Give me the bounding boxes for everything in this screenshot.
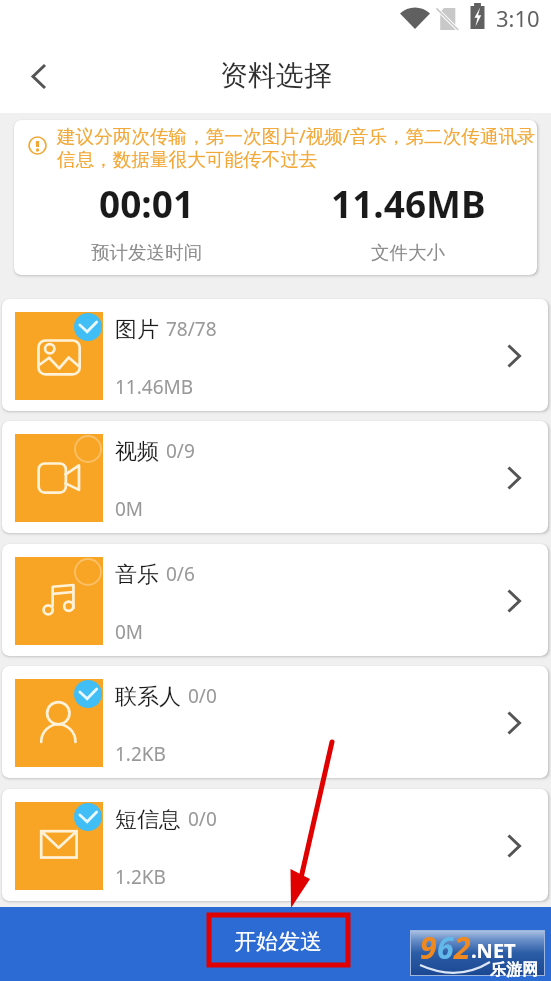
button[interactable]: Back: [18, 55, 60, 97]
staticText: 0/9: [166, 438, 195, 464]
button[interactable]: 音乐: [2, 544, 548, 656]
button[interactable]: 图片: [2, 299, 548, 411]
staticText: 6: [437, 927, 454, 968]
staticText: 短信息: [115, 806, 181, 834]
button[interactable]: 开始发送: [208, 914, 348, 965]
staticText: 联系人: [115, 683, 181, 711]
staticText: 3:10: [496, 3, 540, 33]
button[interactable]: 视频: [2, 421, 548, 533]
staticText: 2: [454, 927, 471, 968]
staticText: 78/78: [166, 316, 217, 342]
staticText: 乐游网: [490, 960, 538, 980]
staticText: 0M: [115, 496, 144, 522]
staticText: 11.46MB: [115, 374, 194, 400]
button[interactable]: 联系人: [2, 666, 548, 778]
staticText: 1.2KB: [115, 741, 166, 767]
staticText: 0M: [115, 619, 144, 645]
staticText: 9: [420, 927, 437, 968]
staticText: 建议分两次传输，第一次图片/视频/音乐，第二次传通讯录 信息，数据量很大可能传不…: [57, 123, 536, 172]
staticText: 音乐: [115, 561, 159, 589]
staticText: 文件大小: [371, 241, 445, 264]
staticText: 0/6: [166, 561, 195, 587]
staticText: 1.2KB: [115, 864, 166, 890]
button[interactable]: 短信息: [2, 789, 548, 901]
staticText: 图片: [115, 316, 159, 344]
staticText: 00:01: [99, 178, 195, 228]
staticText: 11.46MB: [331, 178, 486, 228]
staticText: 开始发送: [234, 928, 322, 956]
staticText: 预计发送时间: [91, 241, 202, 264]
staticText: 资料选择: [220, 58, 332, 93]
staticText: .NET: [471, 937, 516, 964]
staticText: 视频: [115, 438, 159, 466]
staticText: 0/0: [188, 806, 217, 832]
staticText: 0/0: [188, 683, 217, 709]
